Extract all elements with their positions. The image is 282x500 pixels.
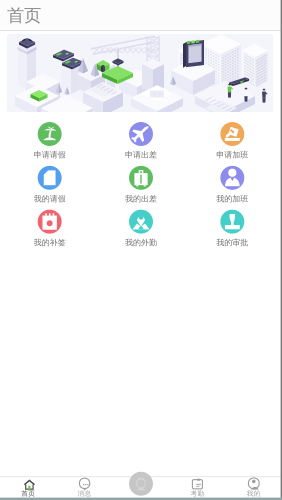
button[interactable]: 我的出差 [95,166,187,204]
staticText: 我的补签 [34,238,66,247]
button[interactable]: 我的审批 [187,210,278,247]
button[interactable]: 我的加班 [187,166,278,204]
button[interactable]: 申请出差 [95,122,187,160]
staticText: 我的出差 [125,194,157,204]
button[interactable]: 考勤 [169,479,226,498]
staticText: 首页 [7,5,41,26]
button[interactable]: 申请请假 [4,122,95,160]
button[interactable]: 打卡 [129,472,153,496]
staticText: 申请出差 [125,150,157,160]
button[interactable]: 我的补签 [4,210,95,247]
staticText: 申请加班 [216,150,248,160]
staticText: 我的请假 [34,194,66,204]
staticText: 消息 [78,489,92,498]
button[interactable]: 我的 [226,479,282,498]
staticText: 申请请假 [34,150,66,160]
button[interactable]: 我的请假 [4,166,95,204]
staticText: 我的审批 [216,238,248,247]
button[interactable]: 首页 [0,479,56,498]
button[interactable]: 消息 [56,479,113,498]
staticText: 考勤 [190,489,204,498]
button[interactable]: 我的外勤 [95,210,187,247]
button[interactable]: 申请加班 [187,122,278,160]
staticText: 我的 [247,489,261,498]
staticText: 我的加班 [216,194,248,204]
staticText: 首页 [21,489,35,498]
staticText: 我的外勤 [125,238,157,247]
